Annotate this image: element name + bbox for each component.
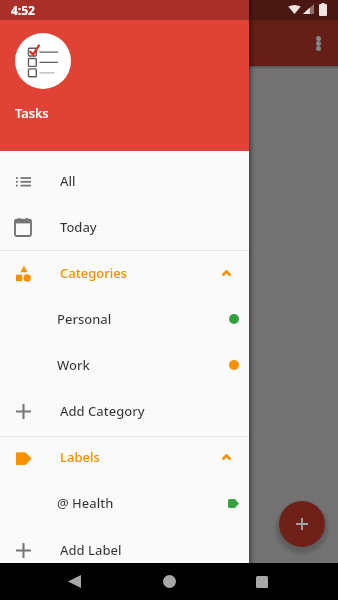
staticText: Labels — [60, 448, 100, 466]
staticText: Add Label — [60, 541, 122, 559]
button[interactable]: Recents — [245, 563, 279, 600]
button[interactable]: Add Category — [0, 388, 249, 434]
button[interactable]: Personal — [0, 296, 249, 342]
button[interactable]: Labels — [0, 434, 249, 480]
button[interactable]: All — [0, 158, 249, 204]
button[interactable]: Work — [0, 342, 249, 388]
button[interactable]: More options — [300, 20, 336, 66]
staticText: Work — [57, 356, 90, 374]
button[interactable]: @ Health — [0, 480, 249, 526]
staticText: @ Health — [57, 494, 114, 512]
button[interactable]: Back — [57, 563, 91, 600]
button[interactable]: Add Label — [0, 527, 249, 573]
staticText: Personal — [57, 310, 112, 328]
staticText: Categories — [60, 264, 127, 282]
staticText: Today — [60, 218, 97, 236]
staticText: Tasks — [15, 104, 49, 122]
button[interactable]: Categories — [0, 250, 249, 296]
staticText: Add Category — [60, 402, 145, 420]
button[interactable]: Add task — [279, 501, 325, 547]
staticText: 4:52 — [11, 2, 35, 18]
button[interactable]: Today — [0, 204, 249, 250]
button[interactable]: Home — [152, 563, 186, 600]
staticText: All — [60, 172, 76, 190]
